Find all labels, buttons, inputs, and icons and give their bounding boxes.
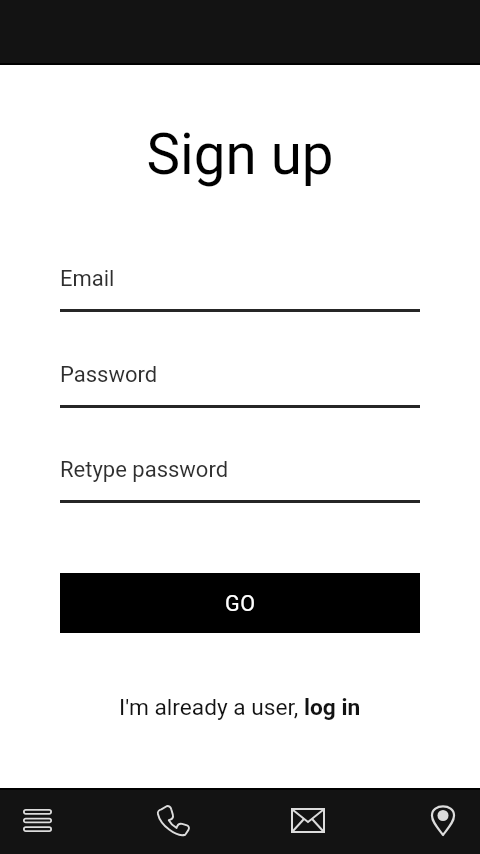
button[interactable]: Location [419, 796, 467, 844]
button[interactable]: GO [60, 573, 420, 633]
staticText: GO [225, 591, 256, 616]
button[interactable]: Call [148, 796, 196, 844]
staticText: Email [60, 266, 115, 292]
staticText: Sign up [0, 122, 480, 188]
button[interactable]: I'm already a user, log in [0, 694, 480, 722]
button[interactable]: Email [60, 258, 420, 314]
button[interactable]: Password [60, 354, 420, 410]
staticText: I'm already a user, log in [119, 694, 361, 721]
staticText: Retype password [60, 457, 229, 483]
button[interactable]: Menu [13, 796, 61, 844]
button[interactable]: Mail [284, 796, 332, 844]
staticText: Password [60, 362, 158, 388]
button[interactable]: Retype password [60, 449, 420, 505]
